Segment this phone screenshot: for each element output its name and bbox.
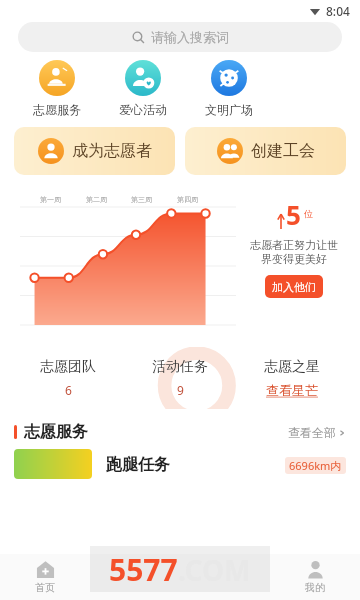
staticText: 查看全部 [288, 425, 336, 440]
staticText: 第三周 [131, 195, 152, 204]
staticText: 志愿之星 [264, 358, 320, 376]
staticText: 爱心活动 [119, 102, 167, 117]
button[interactable]: 志愿服务 [30, 60, 84, 117]
button[interactable]: 我的 [270, 554, 360, 600]
staticText: 9 [177, 382, 184, 398]
staticText: 第四周 [177, 195, 198, 204]
button[interactable]: 志愿之星 [236, 347, 348, 409]
staticText: 志愿团队 [40, 358, 96, 376]
staticText: 活动任务 [152, 358, 208, 376]
staticText: 文明广场 [205, 102, 253, 117]
staticText: 5 [286, 197, 301, 232]
staticText: 志愿服务 [24, 422, 88, 442]
staticText: 志愿者正努力让世 界变得更美好 [240, 238, 348, 266]
button[interactable]: 爱心活动 [116, 60, 170, 117]
staticText: 6 [65, 382, 72, 398]
button[interactable]: 查看全部 [288, 425, 346, 440]
staticText: 位 [304, 208, 313, 219]
staticText: 第一周 [40, 195, 61, 204]
staticText: 首页 [35, 581, 55, 594]
staticText: 创建工会 [251, 141, 315, 161]
button[interactable]: 活动任务 [124, 347, 236, 409]
staticText: 6696km内 [289, 458, 342, 473]
staticText: 志愿服务 [33, 102, 81, 117]
button[interactable]: 加入他们 [265, 275, 323, 298]
staticText: 成为志愿者 [72, 141, 152, 161]
staticText: 5577 [109, 549, 178, 590]
staticText: 我的 [305, 581, 325, 594]
button[interactable]: 创建工会 [185, 127, 346, 175]
button[interactable]: 跑腿任务 [14, 449, 346, 505]
button[interactable]: 请输入搜索词 [18, 22, 342, 52]
staticText: 8:04 [326, 3, 350, 19]
staticText: 跑腿任务 [106, 455, 170, 475]
button[interactable]: 成为志愿者 [14, 127, 175, 175]
staticText: 请输入搜索词 [151, 29, 229, 45]
staticText: 加入他们 [272, 280, 316, 294]
button[interactable]: 文明广场 [202, 60, 256, 117]
staticText: 查看星芒 [266, 382, 318, 398]
button[interactable]: 首页 [0, 554, 90, 600]
button[interactable]: 志愿团队 [12, 347, 124, 409]
staticText: 第二周 [86, 195, 107, 204]
